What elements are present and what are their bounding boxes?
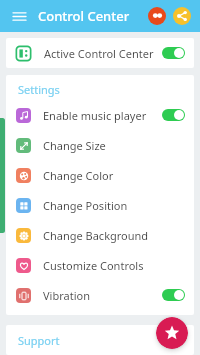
staticText: Change Background <box>43 228 149 243</box>
button[interactable]: Change Position <box>6 190 194 220</box>
button[interactable]: Change Color <box>6 160 194 190</box>
staticText: Settings <box>18 82 60 97</box>
staticText: Control Center <box>38 7 130 25</box>
button[interactable]: Rate app <box>156 317 188 349</box>
staticText: Change Position <box>43 198 128 213</box>
button[interactable]: Change Size <box>6 130 194 160</box>
staticText: Active Control Center <box>44 46 154 61</box>
button[interactable]: Active Control Center <box>6 38 194 68</box>
staticText: Enable music player <box>43 108 147 123</box>
button[interactable]: Menu <box>9 6 29 26</box>
button[interactable]: Change Background <box>6 220 194 250</box>
staticText: Change Size <box>43 138 106 153</box>
button[interactable]: Toggle on <box>162 109 185 121</box>
staticText: Support <box>18 333 60 348</box>
staticText: Vibration <box>43 288 90 303</box>
button[interactable]: Enable music player <box>6 100 194 130</box>
button[interactable]: Toggle on <box>162 47 185 59</box>
button[interactable]: Open drawer handle <box>0 118 5 233</box>
staticText: Customize Controls <box>43 258 144 273</box>
button[interactable]: Toggle on <box>162 289 185 301</box>
button[interactable]: Glasses promo <box>148 7 166 25</box>
staticText: Change Color <box>43 168 114 183</box>
button[interactable]: Share <box>173 7 191 25</box>
button[interactable]: Vibration <box>6 280 194 310</box>
button[interactable]: Customize Controls <box>6 250 194 280</box>
